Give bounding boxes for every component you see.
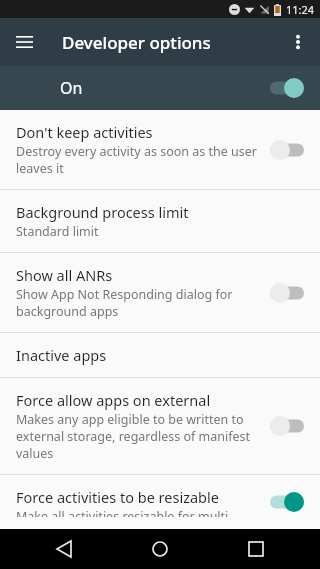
button[interactable]: Force activities to be resizable <box>0 475 320 529</box>
button[interactable]: On <box>0 66 320 110</box>
staticText: Standard limit <box>16 223 99 240</box>
staticText: Developer options <box>62 31 211 54</box>
button[interactable]: Inactive apps <box>0 333 320 377</box>
staticText: Force activities to be resizable <box>16 487 219 507</box>
staticText: Background process limit <box>16 202 189 222</box>
button[interactable]: Show all ANRs toggle <box>266 283 308 303</box>
staticText: Show App Not Responding dialog for backg… <box>16 286 233 320</box>
staticText: Force allow apps on external <box>16 390 211 410</box>
button[interactable]: Force allow apps on external toggle <box>266 416 308 436</box>
button[interactable]: Back <box>32 529 96 569</box>
button[interactable]: Recent apps <box>224 529 288 569</box>
button[interactable]: Force allow apps on external <box>0 378 320 474</box>
staticText: Inactive apps <box>16 345 107 365</box>
button[interactable]: Background process limit <box>0 190 320 252</box>
staticText: Make all activities resizable for multi-… <box>16 508 244 517</box>
staticText: 11:24 <box>286 2 315 17</box>
staticText: On <box>60 77 83 99</box>
staticText: Don't keep activities <box>16 122 153 142</box>
staticText: Makes any app eligible to be written to … <box>16 411 251 462</box>
button[interactable]: Don't keep activities toggle <box>266 140 308 160</box>
button[interactable]: Open navigation drawer <box>0 18 48 66</box>
button[interactable]: More options <box>276 20 320 64</box>
staticText: Destroy every activity as soon as the us… <box>16 143 258 177</box>
button[interactable]: Don't keep activities <box>0 110 320 189</box>
button[interactable]: Force activities to be resizable toggle <box>266 492 308 512</box>
button[interactable]: Show all ANRs <box>0 253 320 332</box>
button[interactable]: Home <box>128 529 192 569</box>
staticText: Show all ANRs <box>16 265 113 285</box>
